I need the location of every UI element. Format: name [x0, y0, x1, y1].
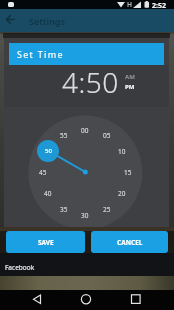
staticText: 10 [118, 147, 126, 156]
button[interactable] [0, 9, 24, 31]
staticText: 15 [124, 168, 132, 177]
staticText: 50 [45, 147, 52, 155]
staticText: Facebook [5, 263, 35, 272]
button[interactable]: 50 [37, 140, 59, 162]
staticText: 00 [81, 126, 89, 135]
button[interactable] [116, 290, 174, 310]
staticText: 2:52 [152, 1, 166, 10]
staticText: SAVE [38, 238, 54, 247]
button[interactable]: CANCEL [91, 231, 168, 253]
staticText: Set Time [17, 48, 64, 60]
button[interactable]: PM [125, 83, 135, 91]
staticText: 40 [44, 189, 52, 198]
button[interactable]: Facebook [0, 253, 174, 276]
staticText: Settings [29, 15, 65, 27]
button[interactable] [58, 290, 116, 310]
button[interactable]: AM [125, 73, 135, 81]
staticText: 55 [60, 131, 68, 140]
staticText: 35 [60, 205, 68, 214]
button[interactable]: Set Time [9, 43, 164, 65]
staticText: 45 [39, 168, 47, 177]
staticText: 05 [103, 131, 111, 140]
staticText: 25 [103, 205, 111, 214]
staticText: 4:50 [62, 63, 119, 101]
staticText: 20 [118, 189, 126, 198]
button[interactable] [0, 290, 58, 310]
staticText: 30 [81, 211, 89, 220]
button[interactable]: SAVE [6, 231, 85, 253]
staticText: CANCEL [117, 238, 143, 247]
